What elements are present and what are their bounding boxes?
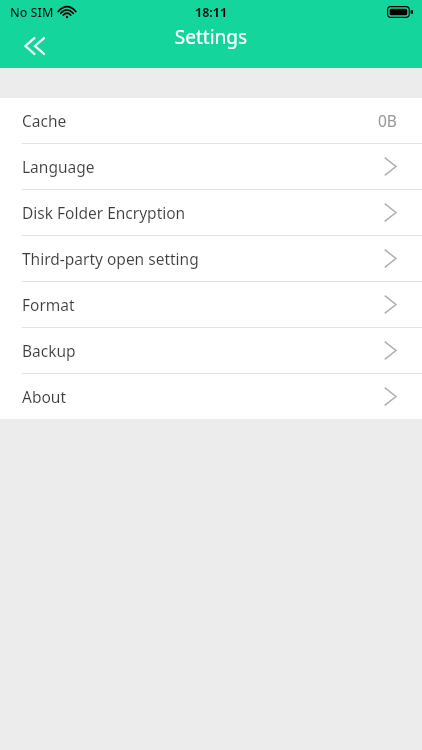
button[interactable]: Backup — [0, 328, 422, 373]
staticText: Format — [22, 294, 75, 315]
staticText: Third-party open setting — [22, 248, 199, 269]
button[interactable]: Back — [16, 24, 60, 68]
staticText: No SIM — [10, 4, 54, 21]
button[interactable]: Language — [0, 144, 422, 189]
button[interactable]: Disk Folder Encryption — [0, 190, 422, 235]
staticText: Settings — [0, 24, 422, 50]
staticText: Backup — [22, 340, 76, 361]
staticText: Language — [22, 156, 95, 177]
staticText: Cache — [22, 110, 67, 131]
button[interactable]: Cache — [0, 98, 422, 143]
button[interactable]: Format — [0, 282, 422, 327]
staticText: Disk Folder Encryption — [22, 202, 186, 223]
button[interactable]: Third-party open setting — [0, 236, 422, 281]
button[interactable]: About — [0, 374, 422, 419]
staticText: 0B — [378, 110, 397, 131]
staticText: 18:11 — [195, 4, 228, 21]
staticText: About — [22, 386, 66, 407]
